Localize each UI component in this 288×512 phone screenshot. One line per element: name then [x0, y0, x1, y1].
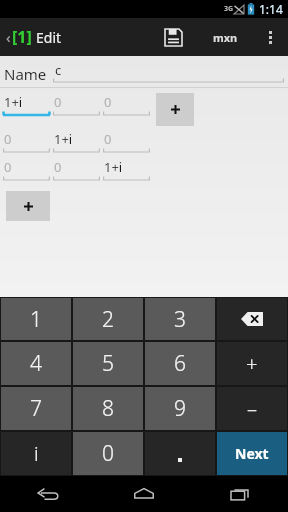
staticText: Name	[4, 64, 47, 84]
button[interactable]: 9	[145, 387, 215, 430]
button[interactable]: i	[1, 432, 71, 475]
staticText: mxn	[213, 30, 238, 45]
staticText: 5	[102, 349, 114, 378]
staticText: Next	[235, 444, 269, 463]
staticText: 9	[174, 394, 186, 423]
staticText: [1]	[12, 26, 32, 48]
button[interactable]: Save	[156, 20, 190, 54]
staticText: 2	[102, 305, 114, 334]
button[interactable]: Recent apps	[192, 476, 288, 512]
staticText: 1+i	[4, 93, 23, 111]
button[interactable]: Next	[217, 432, 287, 475]
staticText: c	[55, 61, 62, 79]
button[interactable]: Home	[96, 476, 192, 512]
staticText: 1	[30, 305, 42, 334]
button[interactable]: c	[53, 61, 284, 84]
button[interactable]: More options	[256, 20, 284, 54]
staticText: 3G	[224, 4, 234, 14]
staticText: 6	[174, 349, 186, 378]
button[interactable]: ‹	[4, 22, 64, 52]
staticText: i	[34, 440, 39, 467]
staticText: –	[247, 395, 257, 422]
button[interactable]: +	[217, 342, 287, 385]
staticText: 0	[54, 93, 62, 111]
staticText: 8	[102, 394, 114, 423]
button[interactable]: 1	[1, 298, 71, 340]
staticText: 0	[4, 130, 12, 148]
button[interactable]: Add	[156, 93, 194, 126]
staticText: 0	[102, 439, 114, 468]
button[interactable]: Backspace	[217, 298, 287, 340]
button[interactable]: 1+i	[103, 158, 150, 182]
staticText: Edit	[36, 28, 62, 47]
staticText: 1+i	[104, 158, 123, 176]
button[interactable]: 5	[73, 342, 143, 385]
button[interactable]: mxn	[202, 20, 248, 54]
button[interactable]: Back	[0, 476, 96, 512]
staticText: ‹	[6, 27, 11, 47]
button[interactable]: 0	[103, 130, 150, 154]
button[interactable]	[145, 432, 215, 475]
button[interactable]: Add	[6, 191, 50, 221]
button[interactable]: 4	[1, 342, 71, 385]
staticText: 1:14	[259, 1, 283, 17]
staticText: 0	[4, 158, 12, 176]
button[interactable]: 0	[3, 130, 50, 154]
staticText: 4	[30, 349, 42, 378]
button[interactable]: 0	[73, 432, 143, 475]
staticText: 1+i	[54, 130, 73, 148]
button[interactable]: 3	[145, 298, 215, 340]
staticText: 7	[30, 394, 42, 423]
button[interactable]: 1+i	[3, 93, 50, 117]
button[interactable]: 0	[103, 93, 150, 117]
button[interactable]: 0	[53, 93, 100, 117]
staticText: 0	[104, 130, 112, 148]
staticText: +	[246, 350, 258, 377]
button[interactable]: 0	[3, 158, 50, 182]
button[interactable]: 1+i	[53, 130, 100, 154]
staticText: 0	[104, 93, 112, 111]
button[interactable]: 8	[73, 387, 143, 430]
button[interactable]: –	[217, 387, 287, 430]
button[interactable]: 0	[53, 158, 100, 182]
staticText: 0	[54, 158, 62, 176]
button[interactable]: 7	[1, 387, 71, 430]
button[interactable]: 6	[145, 342, 215, 385]
staticText: 3	[174, 305, 186, 334]
button[interactable]: 2	[73, 298, 143, 340]
